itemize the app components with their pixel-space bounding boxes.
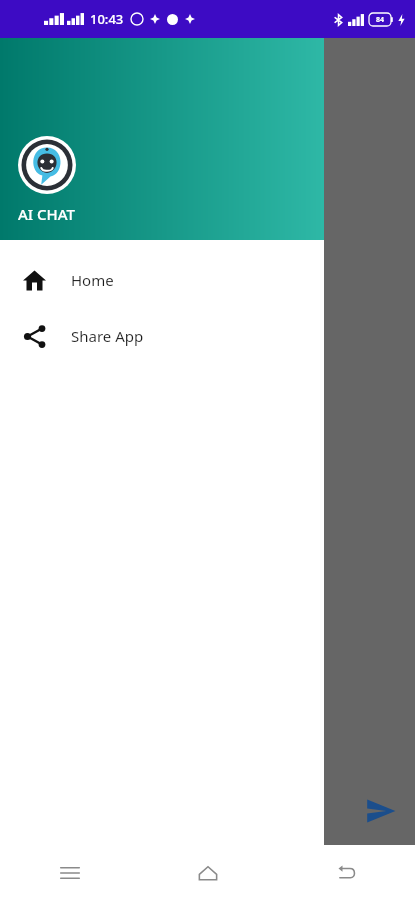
button[interactable]: Share App — [0, 308, 324, 364]
staticText: Home — [71, 270, 114, 290]
staticText: 84 — [376, 15, 385, 25]
button[interactable]: Recent apps — [0, 845, 139, 900]
staticText: 10:43 — [90, 10, 124, 28]
staticText: AI CHAT — [18, 204, 75, 224]
button[interactable]: Home — [0, 252, 324, 308]
staticText: Share App — [71, 326, 144, 346]
button[interactable]: Back — [277, 845, 415, 900]
button[interactable]: Send — [359, 789, 403, 833]
button[interactable]: Home — [139, 845, 277, 900]
